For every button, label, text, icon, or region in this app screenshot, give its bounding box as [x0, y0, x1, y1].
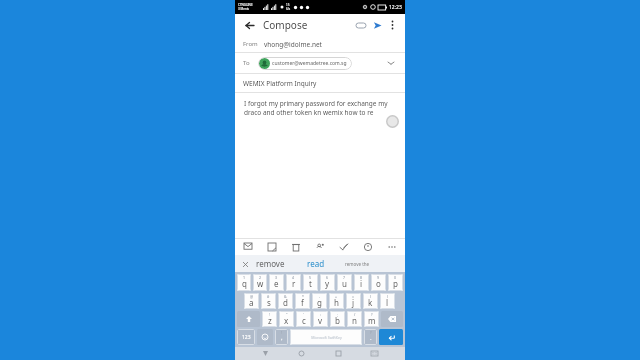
button[interactable]: !	[262, 311, 277, 327]
staticText: y	[325, 278, 330, 289]
staticText: n	[352, 315, 357, 326]
button[interactable]: )	[380, 293, 395, 309]
staticText: ,	[281, 334, 283, 342]
staticText: 5	[309, 275, 312, 280]
button[interactable]: Mark read	[336, 239, 352, 255]
button[interactable]: Expand	[385, 57, 397, 69]
button[interactable]: #	[261, 293, 276, 309]
button[interactable]: ?	[364, 311, 379, 327]
staticText: g	[317, 297, 322, 308]
staticText: m	[368, 315, 376, 326]
staticText: WEMIX Platform Inquiry	[243, 79, 317, 88]
button[interactable]: read	[307, 258, 325, 269]
staticText: 0	[394, 275, 397, 280]
button[interactable]: Enter	[379, 329, 403, 345]
button[interactable]: *	[295, 293, 310, 309]
staticText: ?	[370, 330, 372, 335]
button[interactable]: Expand suggestions	[240, 259, 250, 269]
staticText: read	[307, 258, 325, 269]
button[interactable]: 3	[269, 274, 284, 291]
button[interactable]: Delete	[288, 239, 304, 255]
staticText: +	[335, 294, 338, 299]
button[interactable]: &	[278, 293, 293, 309]
button[interactable]: 9	[371, 274, 386, 291]
button[interactable]: Recents	[332, 347, 345, 360]
button[interactable]: ;	[330, 311, 345, 327]
button[interactable]: 2	[253, 274, 267, 291]
button[interactable]: Space	[290, 329, 362, 345]
button[interactable]: Attach	[353, 17, 369, 33]
button[interactable]: (	[363, 293, 378, 309]
button[interactable]: remove the	[345, 261, 370, 267]
staticText: i	[360, 278, 363, 289]
staticText: 3 Menis	[238, 7, 249, 11]
button[interactable]: Emoji	[257, 329, 273, 345]
staticText: )	[387, 294, 389, 299]
staticText: 6	[326, 275, 329, 280]
staticText: Microsoft SwiftKey	[311, 335, 342, 340]
staticText: remove	[256, 258, 285, 269]
staticText: t	[309, 278, 312, 289]
staticText: .	[370, 334, 372, 342]
button[interactable]: Home	[295, 347, 308, 360]
staticText: 4	[292, 275, 295, 280]
button[interactable]: 5	[303, 274, 318, 291]
staticText: =	[352, 294, 355, 299]
button[interactable]: More options	[385, 18, 399, 32]
staticText: a	[249, 297, 254, 308]
button[interactable]: :	[313, 311, 328, 327]
button[interactable]: =	[346, 293, 361, 309]
button[interactable]: Mail	[240, 239, 256, 255]
button[interactable]: 0	[388, 274, 403, 291]
button[interactable]: Back	[241, 17, 257, 33]
staticText: w	[257, 278, 264, 289]
staticText: s	[267, 297, 271, 308]
staticText: remove the	[345, 261, 370, 267]
button[interactable]: Back	[259, 347, 272, 360]
button[interactable]: Backspace	[381, 311, 403, 327]
button[interactable]: To	[243, 53, 397, 73]
staticText: *	[302, 294, 304, 299]
staticText: !	[269, 312, 270, 317]
staticText: (	[370, 294, 372, 299]
button[interactable]: Send	[369, 17, 385, 33]
staticText: customer@wemadetree.com.sg	[272, 60, 347, 67]
button[interactable]: '	[296, 311, 311, 327]
button[interactable]: 7	[337, 274, 352, 291]
button[interactable]: 4	[286, 274, 301, 291]
button[interactable]: /	[347, 311, 362, 327]
staticText: 2	[259, 275, 262, 280]
staticText: 7	[343, 275, 346, 280]
staticText: vhong@idolme.net	[264, 40, 322, 49]
staticText: q	[242, 278, 247, 289]
button[interactable]: "	[279, 311, 294, 327]
staticText: ?	[371, 312, 373, 317]
button[interactable]: Schedule	[360, 239, 376, 255]
staticText: 6/s	[286, 7, 291, 11]
button[interactable]: ?	[364, 329, 377, 345]
button[interactable]: More	[384, 239, 400, 255]
button[interactable]: 6	[320, 274, 335, 291]
staticText: CTNGLINE	[238, 3, 253, 7]
button[interactable]: 1	[237, 274, 251, 291]
button[interactable]: Contact	[312, 239, 328, 255]
staticText: '	[303, 312, 304, 317]
button[interactable]: 123	[237, 329, 255, 345]
button[interactable]: +	[329, 293, 344, 309]
staticText: To	[243, 59, 250, 67]
staticText: From	[243, 40, 258, 48]
staticText: 3	[275, 275, 278, 280]
button[interactable]: 8	[354, 274, 369, 291]
button[interactable]: !	[275, 329, 288, 345]
staticText: p	[393, 278, 398, 289]
button[interactable]: Shift	[237, 311, 260, 327]
staticText: #	[267, 294, 270, 299]
staticText: r	[292, 278, 296, 289]
button[interactable]: Note	[264, 239, 280, 255]
button[interactable]: Hide keyboard	[368, 347, 381, 360]
button[interactable]: -	[312, 293, 327, 309]
button[interactable]: @	[244, 293, 259, 309]
staticText: k	[368, 297, 373, 308]
button[interactable]: remove	[256, 258, 285, 269]
staticText: c	[302, 315, 306, 326]
